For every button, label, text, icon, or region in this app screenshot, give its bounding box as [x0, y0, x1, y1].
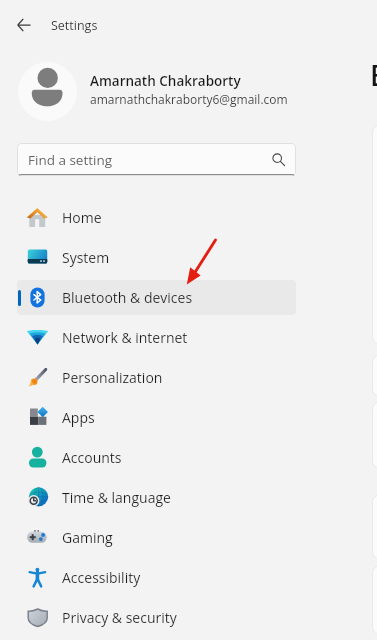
staticText: Accessibility — [62, 568, 141, 587]
button[interactable]: Apps — [17, 400, 296, 435]
button[interactable]: Gaming — [17, 520, 296, 555]
button[interactable]: Account picture — [18, 62, 77, 121]
button[interactable]: Privacy & security — [17, 600, 296, 635]
button[interactable]: Network & internet — [17, 320, 296, 355]
button[interactable]: Time & language — [17, 480, 296, 515]
staticText: Privacy & security — [62, 608, 177, 627]
staticText: Home — [62, 208, 102, 227]
button[interactable]: Home — [17, 200, 296, 235]
button[interactable]: Find a setting — [17, 143, 296, 176]
staticText: Apps — [62, 408, 95, 427]
staticText: Bluetooth & devices — [370, 56, 377, 94]
button[interactable]: Accessibility — [17, 560, 296, 595]
button[interactable]: Accounts — [17, 440, 296, 475]
staticText: Settings — [51, 17, 98, 34]
staticText: Find a setting — [28, 151, 113, 169]
staticText: Network & internet — [62, 328, 188, 347]
staticText: Time & language — [62, 488, 171, 507]
button[interactable]: Personalization — [17, 360, 296, 395]
staticText: amarnathchakraborty6@gmail.com — [90, 91, 288, 107]
staticText: Bluetooth & devices — [62, 288, 193, 307]
staticText: Amarnath Chakraborty — [90, 72, 241, 90]
button[interactable]: Bluetooth & devices — [17, 280, 296, 315]
button[interactable]: System — [17, 240, 296, 275]
staticText: Personalization — [62, 368, 163, 387]
staticText: Gaming — [62, 528, 113, 547]
button[interactable]: Back — [10, 11, 38, 39]
staticText: System — [62, 248, 110, 267]
staticText: Accounts — [62, 448, 122, 467]
